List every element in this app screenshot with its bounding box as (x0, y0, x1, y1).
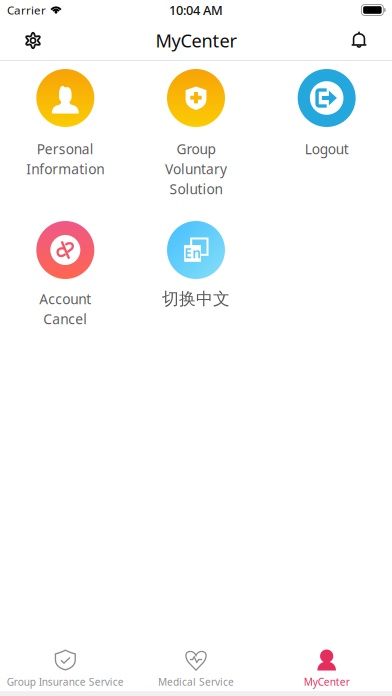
staticText: 切换中文 (162, 288, 230, 310)
staticText: MyCenter (155, 28, 236, 53)
button[interactable]: Personal (0, 69, 131, 221)
staticText: Information (26, 160, 104, 178)
button[interactable]: Group Insurance Service (0, 642, 131, 691)
staticText: Medical Service (158, 675, 234, 689)
staticText: Group (176, 140, 215, 158)
staticText: Logout (305, 140, 349, 158)
staticText: En (184, 244, 201, 262)
staticText: Personal (37, 140, 94, 158)
staticText: Group Insurance Service (7, 675, 124, 689)
button[interactable]: Settings (11, 20, 55, 61)
button[interactable]: Logout (261, 69, 392, 221)
staticText: Solution (169, 180, 222, 198)
staticText: MyCenter (304, 675, 350, 689)
button[interactable]: Notifications (337, 20, 381, 61)
button[interactable]: Medical Service (131, 642, 261, 691)
button[interactable]: En (131, 221, 261, 341)
button[interactable]: Group (131, 69, 261, 221)
staticText: 10:04 AM (169, 1, 223, 19)
button[interactable]: Account (0, 221, 131, 341)
button[interactable]: MyCenter (261, 642, 392, 691)
staticText: Voluntary (165, 160, 227, 178)
staticText: Cancel (43, 310, 87, 328)
staticText: Carrier (7, 2, 46, 18)
staticText: Account (39, 290, 91, 308)
